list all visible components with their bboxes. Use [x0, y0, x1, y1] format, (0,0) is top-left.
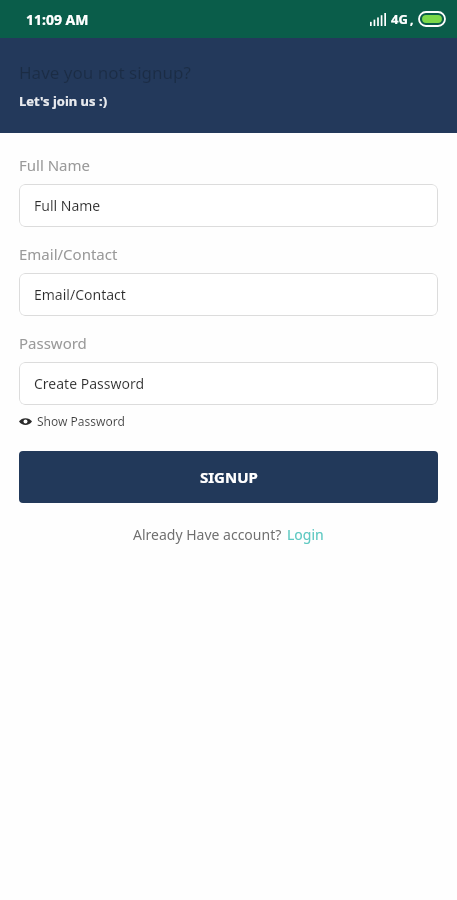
- staticText: SIGNUP: [200, 467, 258, 487]
- staticText: Already Have account?: [133, 525, 282, 544]
- staticText: Full Name: [19, 155, 90, 175]
- staticText: 11:09 AM: [26, 10, 89, 29]
- staticText: Email/Contact: [19, 244, 118, 264]
- button[interactable]: Create Password: [19, 362, 438, 405]
- staticText: Password: [19, 333, 87, 353]
- staticText: Email/Contact: [34, 285, 126, 304]
- staticText: Full Name: [34, 196, 101, 215]
- staticText: Let's join us :): [19, 92, 108, 110]
- button[interactable]: Email/Contact: [19, 273, 438, 316]
- other: Show Password: [19, 417, 32, 426]
- staticText: ,: [410, 11, 414, 27]
- button[interactable]: Full Name: [19, 184, 438, 227]
- staticText: Login: [287, 525, 324, 544]
- button[interactable]: Show Password: [19, 411, 125, 431]
- staticText: 4G: [391, 10, 408, 28]
- staticText: Create Password: [34, 374, 145, 393]
- button[interactable]: Login: [287, 525, 324, 544]
- button[interactable]: SIGNUP: [19, 451, 438, 503]
- staticText: Have you not signup?: [19, 61, 191, 84]
- staticText: Show Password: [37, 413, 125, 429]
